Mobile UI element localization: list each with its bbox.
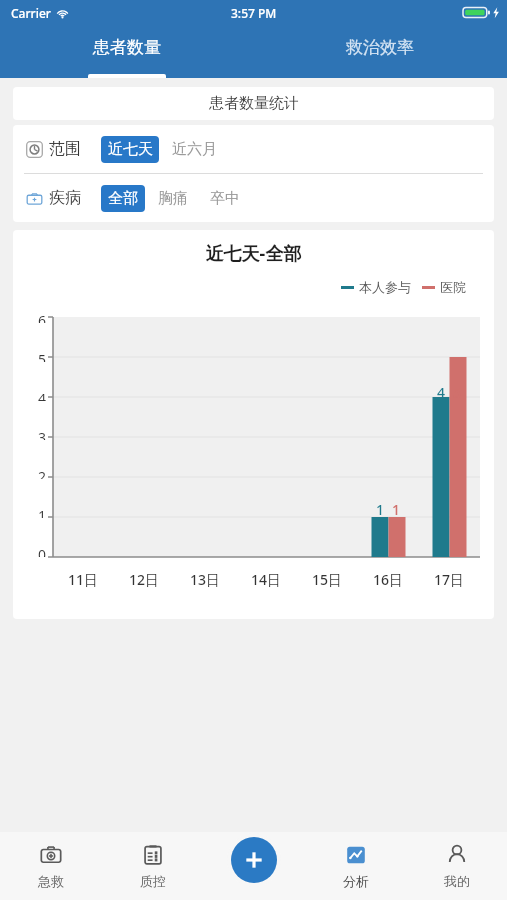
staticText: 4: [38, 389, 47, 401]
staticText: 3:57 PM: [231, 5, 277, 21]
other: 质控: [142, 844, 164, 866]
staticText: 17日: [434, 570, 465, 589]
staticText: 11日: [68, 570, 99, 589]
staticText: 1: [38, 506, 47, 518]
button[interactable]: 胸痛: [149, 185, 197, 212]
staticText: 本人参与: [359, 279, 411, 295]
staticText: 我的: [444, 873, 470, 889]
staticText: 医院: [440, 279, 466, 295]
button[interactable]: 分析: [305, 832, 406, 900]
button[interactable]: 近六月: [163, 136, 225, 163]
other: 我的: [446, 844, 468, 866]
button[interactable]: 救治效率: [253, 25, 507, 78]
staticText: 患者数量: [93, 37, 161, 58]
staticText: 患者数量统计: [209, 94, 299, 113]
staticText: 救治效率: [346, 37, 414, 58]
staticText: 全部: [108, 189, 138, 208]
button[interactable]: 卒中: [201, 185, 249, 212]
staticText: 15日: [312, 570, 343, 589]
staticText: 卒中: [210, 189, 240, 208]
staticText: 近六月: [172, 140, 217, 159]
staticText: 5: [38, 350, 47, 362]
staticText: 疾病: [49, 188, 81, 208]
button[interactable]: 患者数量: [0, 25, 253, 78]
staticText: 1: [376, 500, 385, 519]
staticText: 急救: [38, 873, 64, 889]
other: 急救: [40, 844, 62, 866]
staticText: 14日: [251, 570, 282, 589]
staticText: 范围: [49, 139, 81, 159]
staticText: 分析: [343, 873, 369, 889]
other: 分析: [345, 844, 367, 866]
button[interactable]: 近七天: [101, 136, 159, 163]
staticText: Carrier: [11, 5, 51, 21]
button[interactable]: 我的: [406, 832, 507, 900]
button[interactable]: 创建: [204, 832, 305, 900]
staticText: 近七天: [108, 140, 153, 159]
button[interactable]: 质控: [102, 832, 204, 900]
staticText: 4: [437, 383, 446, 402]
staticText: 2: [38, 467, 47, 479]
staticText: 近七天-全部: [13, 241, 494, 266]
staticText: 13日: [190, 570, 221, 589]
button[interactable]: 急救: [0, 832, 102, 900]
staticText: 3: [38, 428, 47, 440]
staticText: 16日: [373, 570, 404, 589]
staticText: 0: [38, 545, 47, 557]
staticText: 胸痛: [158, 189, 188, 208]
button[interactable]: 创建: [231, 837, 277, 883]
staticText: 1: [392, 500, 401, 519]
button[interactable]: 全部: [101, 185, 145, 212]
staticText: 12日: [129, 570, 160, 589]
staticText: 质控: [140, 873, 166, 889]
staticText: 6: [38, 311, 47, 323]
